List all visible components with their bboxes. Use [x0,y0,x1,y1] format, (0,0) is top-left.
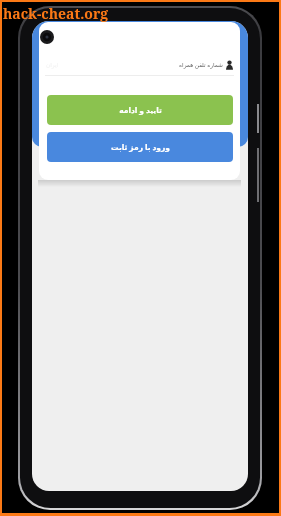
staticText: شماره تلفن همراه [179,61,223,69]
button[interactable]: ورود با رمز ثابت [47,132,233,162]
staticText: ورود با رمز ثابت [111,142,170,152]
staticText: ایران [46,62,59,69]
staticText: hack-cheat.org [3,4,109,23]
button[interactable]: تایید و ادامه [47,95,233,125]
staticText: تایید و ادامه [119,105,162,115]
